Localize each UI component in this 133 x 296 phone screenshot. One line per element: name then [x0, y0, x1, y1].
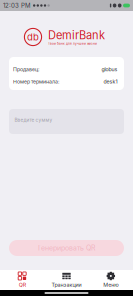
button[interactable]: Меню	[89, 270, 133, 290]
button[interactable]: Генерировать QR	[9, 240, 124, 256]
staticText: QR	[19, 282, 26, 288]
staticText: Номер терминала:	[13, 78, 59, 85]
staticText: DemirBank	[48, 28, 105, 42]
staticText: Меню	[103, 282, 118, 288]
staticText: desk1	[103, 78, 117, 85]
staticText: Введите сумму	[14, 117, 52, 123]
staticText: Генерировать QR	[38, 244, 95, 252]
staticText: db	[27, 31, 39, 43]
staticText: 12:03 PM	[3, 2, 31, 9]
staticText: Транзакции	[51, 282, 81, 288]
button[interactable]: Транзакции	[44, 270, 89, 290]
staticText: Твой банк для лучшей жизни	[48, 42, 97, 45]
button[interactable]: QR	[0, 270, 44, 290]
staticText: globus	[101, 66, 117, 72]
staticText: Продавец:	[13, 66, 39, 72]
